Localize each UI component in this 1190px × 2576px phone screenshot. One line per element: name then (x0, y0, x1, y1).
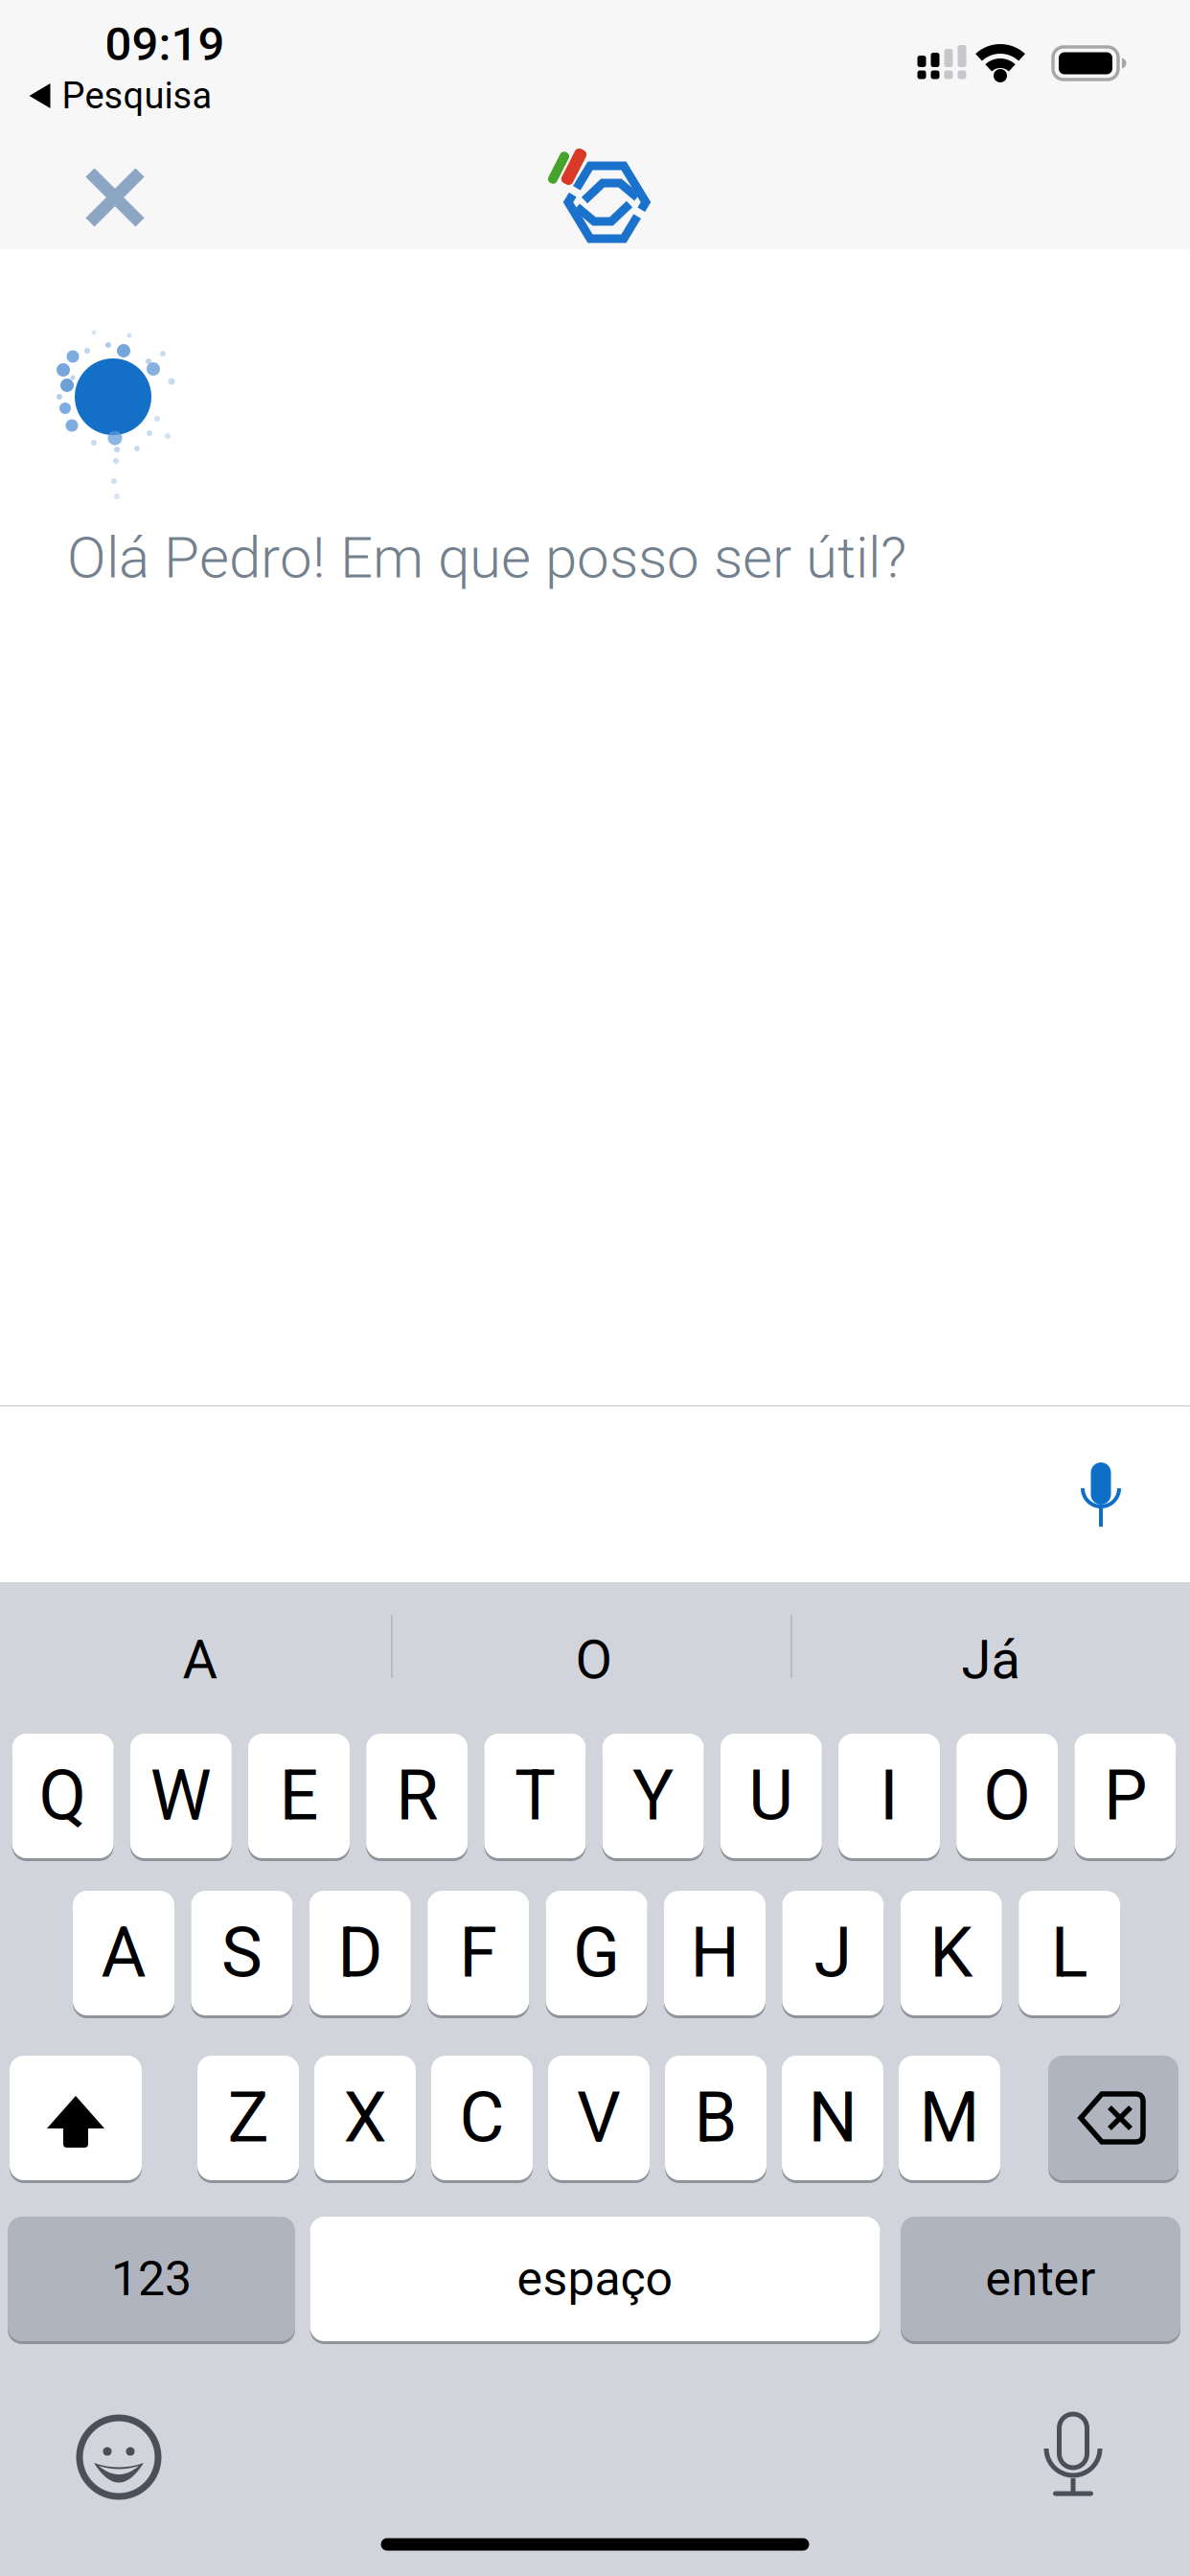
staticText: G (573, 1913, 620, 1994)
button[interactable]: V (548, 2054, 650, 2182)
button[interactable]: B (665, 2054, 767, 2182)
button[interactable]: W (130, 1732, 232, 1860)
staticText: M (919, 2077, 980, 2158)
staticText: S (221, 1913, 262, 1994)
button[interactable]: C (431, 2054, 533, 2182)
button[interactable]: Fechar (87, 170, 143, 225)
button[interactable]: X (314, 2054, 416, 2182)
staticText: N (808, 2077, 857, 2158)
staticText: F (459, 1913, 497, 1994)
staticText: X (343, 2077, 387, 2158)
button[interactable]: O (412, 1607, 776, 1713)
staticText: Pesquisa (62, 74, 212, 117)
button[interactable]: Já (809, 1607, 1173, 1713)
button[interactable]: 123 (8, 2215, 295, 2343)
staticText: L (1051, 1913, 1088, 1994)
button[interactable]: K (900, 1889, 1002, 2017)
staticText: R (396, 1755, 438, 1836)
button[interactable]: enter (901, 2215, 1180, 2343)
staticText: P (1104, 1755, 1147, 1836)
staticText: E (279, 1755, 319, 1836)
staticText: J (814, 1913, 852, 1994)
button[interactable]: Y (602, 1732, 704, 1860)
staticText: U (749, 1755, 794, 1836)
staticText: T (514, 1755, 556, 1836)
button[interactable]: P (1074, 1732, 1176, 1860)
button[interactable]: F (428, 1889, 529, 2017)
button[interactable]: Ditado (1046, 2413, 1100, 2497)
button[interactable]: R (366, 1732, 468, 1860)
staticText: O (983, 1755, 1031, 1836)
staticText: A (101, 1913, 146, 1994)
button[interactable]: D (309, 1889, 411, 2017)
button[interactable]: A (73, 1889, 174, 2017)
button[interactable]: E (248, 1732, 350, 1860)
button[interactable]: J (782, 1889, 884, 2017)
button[interactable]: H (664, 1889, 766, 2017)
staticText: Já (961, 1628, 1020, 1691)
staticText: D (338, 1913, 383, 1994)
button[interactable]: N (782, 2054, 883, 2182)
button[interactable]: Z (197, 2054, 299, 2182)
button[interactable]: S (191, 1889, 293, 2017)
button[interactable]: Apagar (1048, 2054, 1179, 2182)
staticText: Y (632, 1755, 674, 1836)
staticText: 123 (111, 2251, 192, 2307)
staticText: A (183, 1628, 218, 1691)
button[interactable]: G (546, 1889, 647, 2017)
staticText: Z (228, 2077, 269, 2158)
staticText: 09:19 (105, 17, 225, 72)
staticText: H (690, 1913, 739, 1994)
button[interactable]: Voltar a Pesquisa (29, 74, 212, 117)
staticText: B (694, 2077, 737, 2158)
staticText: Olá Pedro! Em que posso ser útil? (67, 524, 906, 591)
button[interactable]: M (899, 2054, 1000, 2182)
button[interactable]: espaço (310, 2215, 880, 2343)
button[interactable]: Q (12, 1732, 114, 1860)
staticText: V (577, 2077, 621, 2158)
button[interactable]: Emoji (80, 2418, 158, 2496)
button[interactable]: Ditar (1082, 1462, 1120, 1528)
staticText: K (930, 1913, 973, 1994)
button[interactable]: I (838, 1732, 940, 1860)
button[interactable]: Shift (10, 2054, 142, 2182)
staticText: espaço (517, 2251, 673, 2307)
button[interactable]: O (956, 1732, 1058, 1860)
staticText: I (880, 1755, 899, 1836)
staticText: W (150, 1755, 212, 1836)
staticText: Q (39, 1755, 87, 1836)
button[interactable]: U (720, 1732, 822, 1860)
staticText: O (575, 1628, 613, 1691)
button[interactable]: L (1019, 1889, 1120, 2017)
staticText: C (459, 2077, 504, 2158)
button[interactable]: A (18, 1607, 382, 1713)
button[interactable]: T (484, 1732, 586, 1860)
staticText: enter (985, 2251, 1096, 2307)
